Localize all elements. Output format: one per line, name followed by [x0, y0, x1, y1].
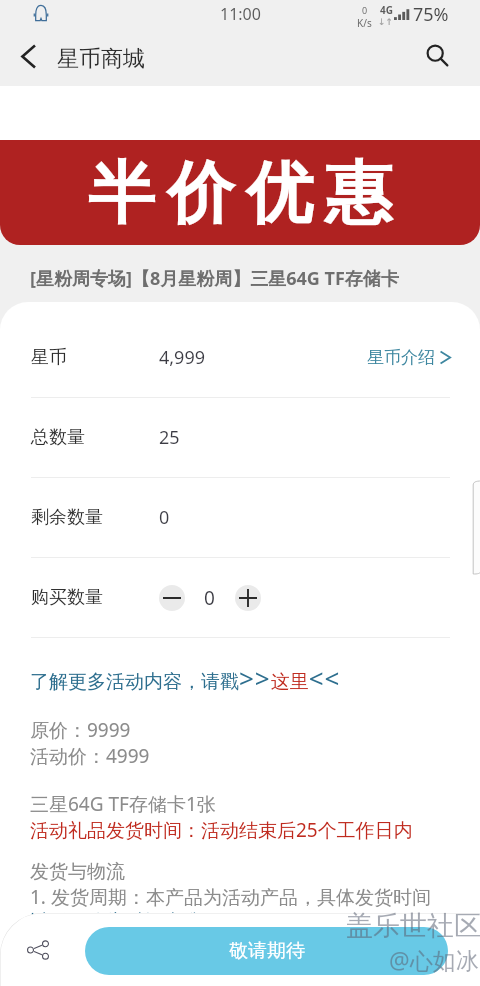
staticText: 0	[362, 4, 368, 16]
staticText: 25	[159, 425, 180, 450]
staticText: 0	[204, 585, 215, 611]
button[interactable]: 总数量	[0, 398, 480, 477]
staticText: 11:00	[220, 3, 261, 25]
staticText: 半价优惠	[82, 151, 398, 235]
staticText: K/s	[357, 16, 372, 30]
staticText: 敬请期待	[229, 939, 305, 963]
staticText: 星币	[31, 346, 67, 369]
staticText: 三星64G TF存储卡1张	[30, 791, 216, 817]
staticText: 星币商城	[57, 45, 145, 73]
staticText: ↓↑	[378, 17, 394, 27]
staticText: 总数量	[31, 426, 85, 449]
staticText: 活动价：4999	[30, 743, 150, 769]
staticText: 剩余数量	[31, 506, 103, 529]
button[interactable]: 半价优惠	[0, 140, 480, 245]
button[interactable]: 了解更多活动内容，请戳>>这里<<	[30, 660, 341, 695]
staticText: 75%	[413, 2, 449, 27]
button[interactable]: Share	[16, 928, 60, 972]
staticText: 4G	[380, 3, 393, 17]
staticText: 购买数量	[31, 586, 103, 609]
button[interactable]: Back	[4, 32, 52, 80]
staticText: 星币介绍	[367, 347, 435, 368]
button[interactable]: 剩余数量	[0, 478, 480, 557]
staticText: 盖乐世社区	[346, 909, 480, 943]
staticText: @心如冰	[389, 944, 479, 975]
button[interactable]: Decrease	[159, 585, 185, 611]
staticText: 原价：9999	[30, 717, 131, 743]
staticText: [星粉周专场]【8月星粉周】三星64G TF存储卡	[30, 266, 399, 291]
button[interactable]: 敬请期待	[85, 927, 448, 975]
staticText: 活动礼品发货时间：活动结束后25个工作日内	[30, 817, 413, 843]
staticText: 1. 发货周期：本产品为活动产品，具体发货时间	[30, 884, 431, 910]
staticText: 0	[159, 505, 170, 530]
button[interactable]: 星币	[0, 318, 480, 397]
staticText: 以活动公告时间为准	[30, 910, 201, 934]
staticText: 发货与物流	[30, 860, 125, 884]
button[interactable]: Search	[415, 33, 459, 77]
button[interactable]: Increase	[235, 585, 261, 611]
staticText: 4,999	[159, 345, 206, 370]
